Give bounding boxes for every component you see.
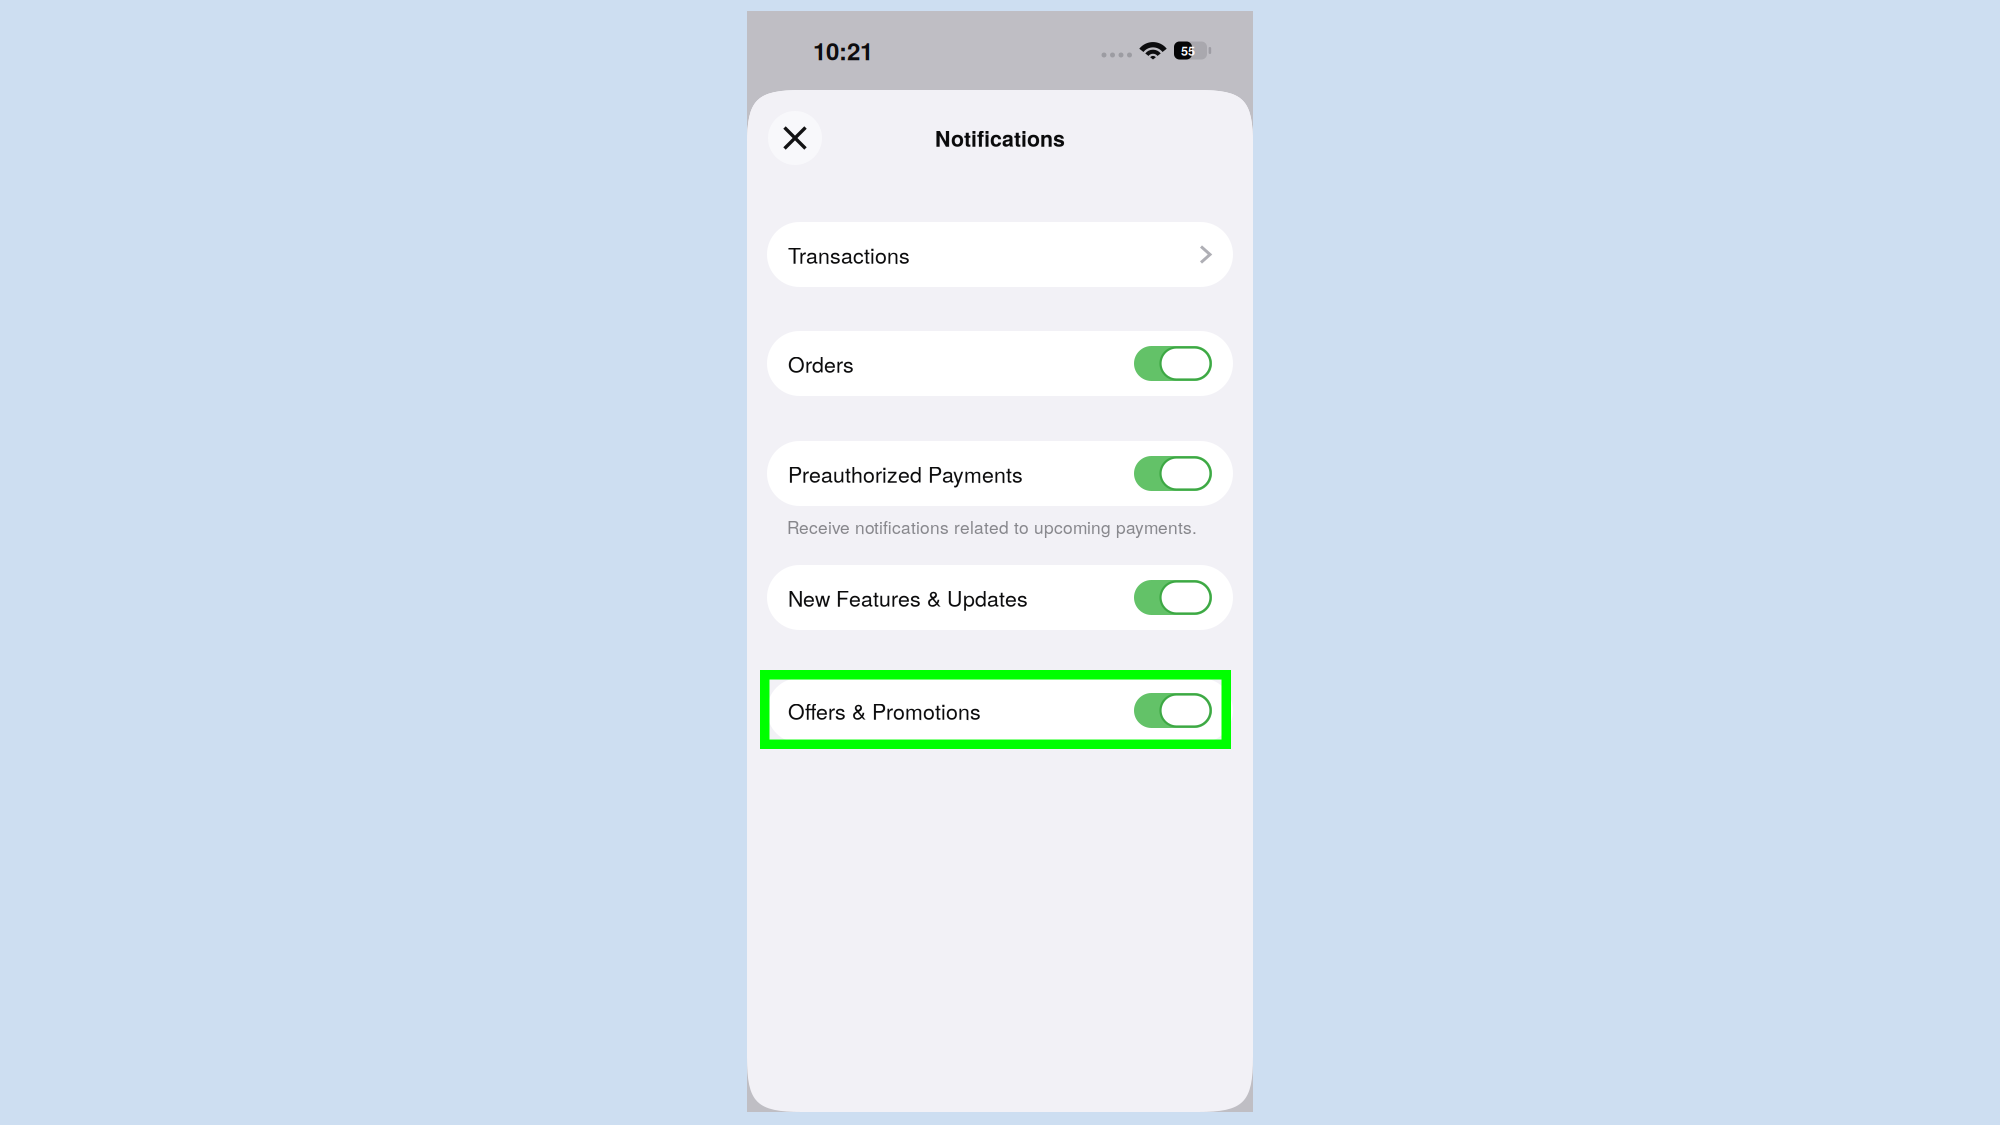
staticText: Preauthorized Payments	[788, 458, 1023, 489]
staticText: Offers & Promotions	[788, 695, 981, 726]
staticText: Orders	[788, 348, 854, 379]
button[interactable]: Close	[768, 111, 822, 165]
staticText: Transactions	[788, 239, 910, 270]
staticText: New Features & Updates	[788, 582, 1028, 613]
button[interactable]: Transactions	[767, 222, 1233, 287]
staticText: 10:21	[813, 33, 873, 68]
staticText: Receive notifications related to upcomin…	[787, 514, 1197, 539]
button[interactable]: Preauthorized Payments	[767, 441, 1233, 506]
button[interactable]: Orders	[767, 331, 1233, 396]
staticText: Notifications	[935, 123, 1065, 153]
button[interactable]: Offers & Promotions	[767, 678, 1233, 743]
button[interactable]: New Features & Updates	[767, 565, 1233, 630]
staticText: 55	[1181, 41, 1195, 59]
